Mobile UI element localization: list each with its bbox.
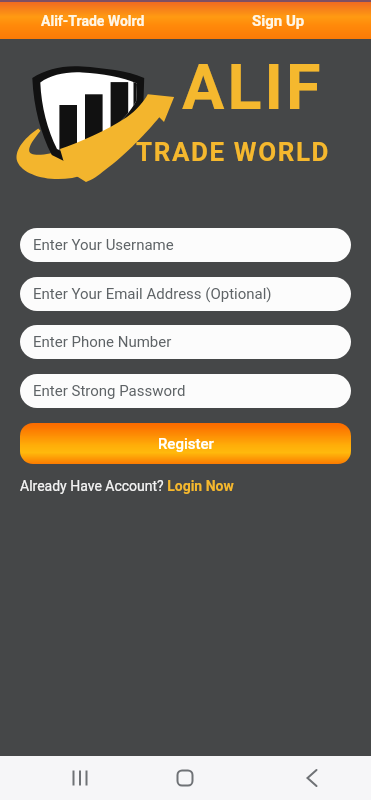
staticText: TRADE WORLD (136, 137, 331, 167)
staticText: Register (158, 435, 214, 453)
staticText: Enter Your Email Address (Optional) (33, 285, 272, 303)
button[interactable]: Home (123, 756, 247, 800)
staticText: Enter Phone Number (33, 333, 172, 351)
button[interactable]: Enter Phone Number (20, 325, 351, 359)
button[interactable]: Enter Your Email Address (Optional) (20, 277, 351, 311)
staticText: Enter Your Username (33, 236, 174, 254)
button[interactable]: Alif-Trade Wolrd (0, 2, 186, 39)
button[interactable]: Enter Your Username (20, 228, 351, 262)
button[interactable]: Enter Strong Password (20, 374, 351, 408)
button[interactable]: Back (247, 756, 371, 800)
staticText: Alif-Trade Wolrd (41, 13, 145, 29)
button[interactable]: Sign Up (186, 2, 371, 39)
staticText: Already Have Account? Login Now (20, 478, 234, 494)
button[interactable]: Already Have Account? Login Now (20, 476, 234, 496)
button[interactable]: Register (20, 423, 351, 464)
staticText: Enter Strong Password (33, 382, 186, 400)
staticText: ALIF (182, 51, 324, 125)
staticText: Sign Up (252, 12, 305, 30)
button[interactable]: Recent apps (0, 756, 123, 800)
